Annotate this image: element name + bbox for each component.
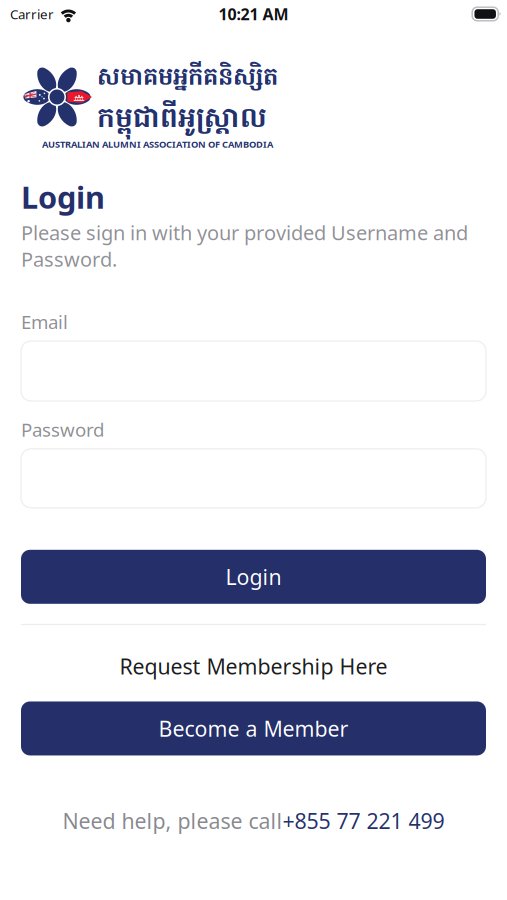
- staticText: Login: [21, 176, 105, 217]
- staticText: +855 77 221 499: [282, 807, 444, 835]
- staticText: Carrier: [10, 5, 54, 23]
- staticText: Need help, please call: [62, 807, 282, 835]
- staticText: AUSTRALIAN ALUMNI ASSOCIATION OF CAMBODI…: [42, 138, 273, 150]
- staticText: Password: [21, 417, 104, 442]
- staticText: កម្ពុជាពីអូស្ត្រាល: [97, 100, 267, 140]
- staticText: សមាគមអ្នកីគនិស្សិត: [97, 62, 278, 96]
- button[interactable]: Become a Member: [21, 701, 486, 755]
- staticText: Email: [21, 309, 68, 334]
- staticText: 10:21 AM: [218, 3, 288, 25]
- staticText: Login: [225, 563, 281, 591]
- button[interactable]: Login: [21, 550, 486, 604]
- staticText: Please sign in with your provided Userna…: [21, 219, 468, 272]
- staticText: Request Membership Here: [119, 652, 387, 680]
- staticText: Become a Member: [158, 714, 348, 743]
